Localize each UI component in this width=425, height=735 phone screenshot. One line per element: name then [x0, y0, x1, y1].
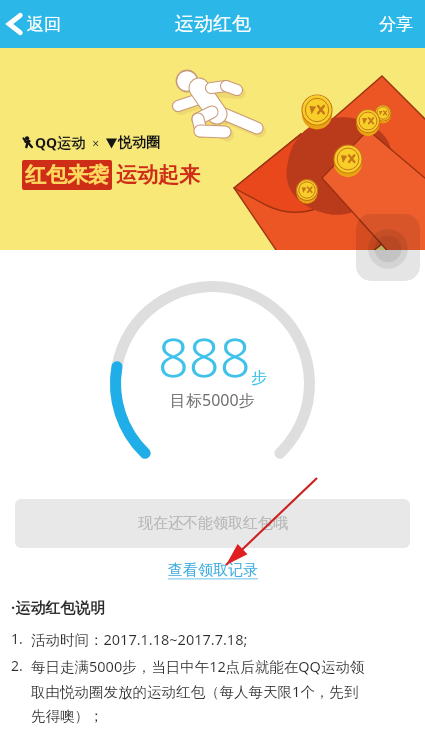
staticText: 目标5000步 — [170, 389, 255, 411]
staticText: QQ运动 — [35, 133, 86, 152]
staticText: 1. — [11, 629, 31, 648]
staticText: 返回 — [27, 14, 61, 35]
button[interactable]: 返回 — [0, 12, 71, 36]
staticText: ·运动红包说明 — [11, 597, 106, 617]
button[interactable]: 查看领取记录 — [164, 557, 262, 584]
staticText: × — [86, 135, 106, 151]
staticText: 现在还不能领取红包哦 — [138, 514, 288, 533]
staticText: 运动起来 — [116, 162, 200, 188]
staticText: 运动红包 — [175, 12, 251, 36]
staticText: 每日走满5000步，当日中午12点后就能在QQ运动领 取由悦动圈发放的运动红包（… — [31, 656, 365, 725]
staticText: 悦动圈 — [118, 134, 160, 152]
staticText: 活动时间：2017.1.18~2017.7.18; — [31, 629, 248, 649]
staticText: 888 — [158, 319, 251, 393]
button[interactable]: 分享 — [367, 14, 425, 35]
staticText: 2. — [11, 656, 31, 675]
staticText: 步 — [251, 368, 267, 388]
staticText: 红包来袭 — [25, 162, 109, 188]
button[interactable]: 现在还不能领取红包哦 — [15, 499, 410, 548]
